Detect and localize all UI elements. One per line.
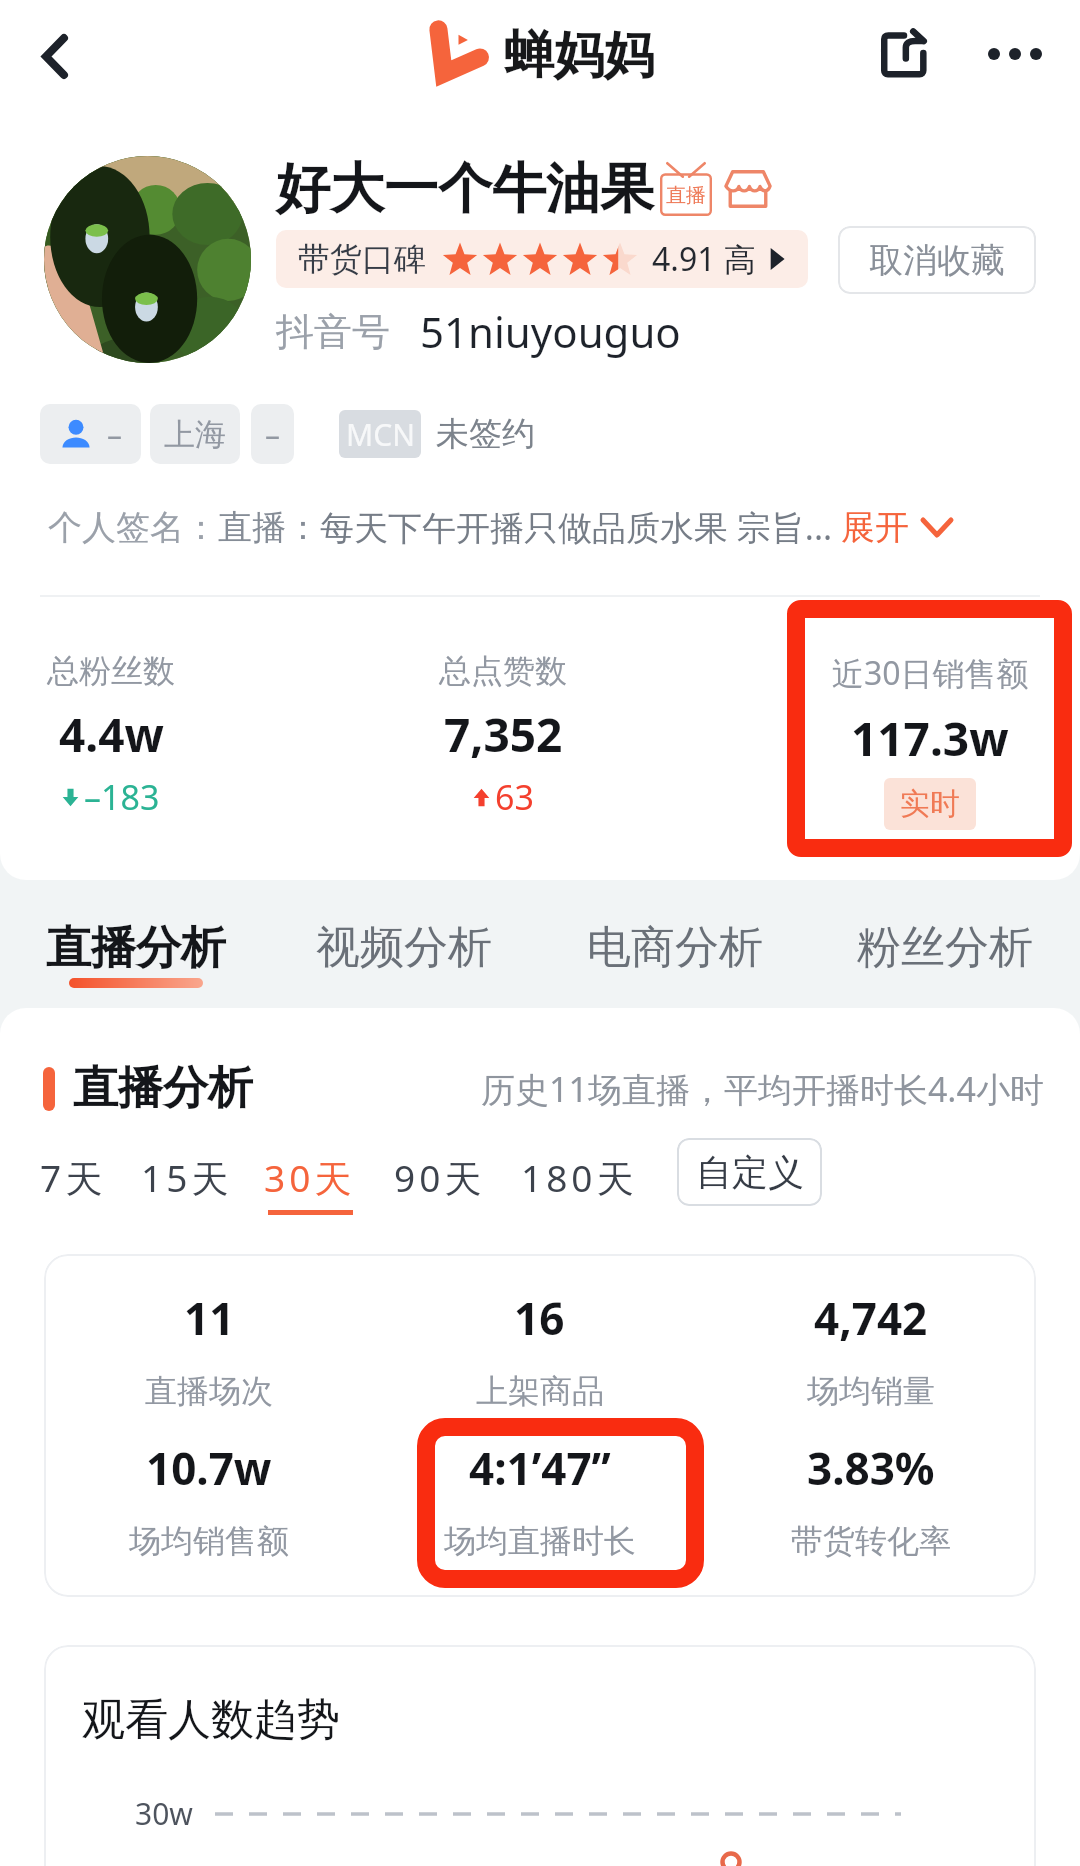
staticText: 7,352	[444, 703, 563, 766]
button[interactable]: 电商分析	[565, 920, 785, 976]
staticText: 抖音号	[276, 308, 390, 356]
staticText: 每天下午开播只做品质水果 宗旨...	[320, 504, 833, 550]
staticText: –183	[84, 774, 160, 820]
staticText: 电商分析	[587, 920, 763, 975]
button[interactable]: Share	[861, 10, 947, 96]
staticText: 总点赞数	[439, 651, 567, 691]
staticText: 直播：	[218, 506, 320, 549]
staticText: 上海	[164, 415, 226, 454]
staticText: –	[107, 414, 122, 455]
staticText: 上架商品	[476, 1371, 604, 1411]
button[interactable]: 10.7w	[44, 1438, 374, 1561]
staticText: 场均销量	[807, 1371, 935, 1411]
staticText: 16	[514, 1288, 565, 1348]
button[interactable]: 直播分析	[26, 920, 246, 988]
staticText: 取消收藏	[869, 239, 1005, 282]
button[interactable]: 4:1’47’’	[374, 1438, 705, 1561]
button[interactable]: More options	[972, 11, 1058, 97]
staticText: 自定义	[696, 1150, 804, 1195]
staticText: 实时	[900, 785, 960, 823]
staticText: 带货口碑	[298, 239, 426, 279]
staticText: MCN	[346, 414, 415, 455]
staticText: 51niuyouguo	[420, 303, 681, 360]
staticText: 直播分析	[73, 1060, 253, 1117]
staticText: 观看人数趋势	[82, 1693, 340, 1747]
button[interactable]: 4,742	[705, 1288, 1036, 1411]
button[interactable]: 16	[374, 1288, 705, 1411]
button[interactable]: 取消收藏	[838, 226, 1036, 294]
button[interactable]: 上海	[150, 404, 240, 464]
button[interactable]: Age	[251, 404, 294, 464]
staticText: 带货转化率	[791, 1521, 951, 1561]
button[interactable]: 180天	[521, 1152, 638, 1215]
staticText: 粉丝分析	[857, 920, 1033, 975]
staticText: 展开	[841, 506, 909, 549]
staticText: 90天	[394, 1152, 486, 1203]
staticText: 117.3w	[851, 707, 1009, 770]
button[interactable]: 30天	[264, 1152, 356, 1215]
button[interactable]: 近30日销售额	[730, 651, 1080, 830]
button[interactable]: Gender	[40, 404, 141, 464]
button[interactable]: Back	[12, 13, 98, 99]
staticText: 30w	[135, 1793, 193, 1834]
button[interactable]: 3.83%	[705, 1438, 1036, 1561]
button[interactable]: 带货口碑	[276, 230, 808, 288]
button[interactable]: 7天	[40, 1152, 107, 1215]
staticText: 11	[184, 1288, 235, 1348]
staticText: 场均直播时长	[444, 1521, 636, 1561]
staticText: 7天	[40, 1152, 107, 1203]
staticText: 场均销售额	[129, 1521, 289, 1561]
button[interactable]: 总粉丝数	[0, 651, 311, 820]
staticText: 4:1’47’’	[469, 1438, 611, 1498]
button[interactable]: 90天	[394, 1152, 486, 1215]
button[interactable]: 展开	[841, 506, 953, 549]
button[interactable]: 11	[44, 1288, 374, 1411]
staticText: 直播场次	[145, 1371, 273, 1411]
staticText: 未签约	[436, 413, 535, 455]
button[interactable]: Profile photo	[44, 156, 251, 363]
staticText: 10.7w	[146, 1438, 272, 1498]
staticText: 直播	[666, 183, 706, 208]
staticText: 直播分析	[46, 920, 226, 977]
button[interactable]: 自定义	[677, 1138, 822, 1206]
staticText: 4.91 高	[652, 237, 756, 281]
staticText: 15天	[141, 1152, 233, 1203]
staticText: 3.83%	[807, 1438, 935, 1498]
staticText: 视频分析	[316, 920, 492, 975]
staticText: 4,742	[814, 1288, 928, 1348]
button[interactable]: 视频分析	[294, 920, 514, 976]
button[interactable]: 粉丝分析	[835, 920, 1055, 976]
staticText: 近30日销售额	[832, 651, 1029, 695]
button[interactable]: 15天	[141, 1152, 233, 1215]
staticText: 4.4w	[59, 703, 164, 766]
staticText: 好大一个牛油果	[276, 155, 654, 223]
staticText: 个人签名：	[48, 506, 218, 549]
button[interactable]: Live streaming	[660, 161, 712, 217]
button[interactable]: Shop	[724, 165, 772, 213]
staticText: 30天	[264, 1152, 356, 1203]
staticText: –	[265, 414, 280, 455]
staticText: 63	[495, 774, 534, 820]
button[interactable]: 总点赞数	[303, 651, 703, 820]
staticText: 总粉丝数	[47, 651, 175, 691]
staticText: 历史11场直播，平均开播时长4.4小时	[481, 1066, 1044, 1112]
staticText: 180天	[521, 1152, 638, 1203]
staticText: 蝉妈妈	[504, 24, 654, 87]
